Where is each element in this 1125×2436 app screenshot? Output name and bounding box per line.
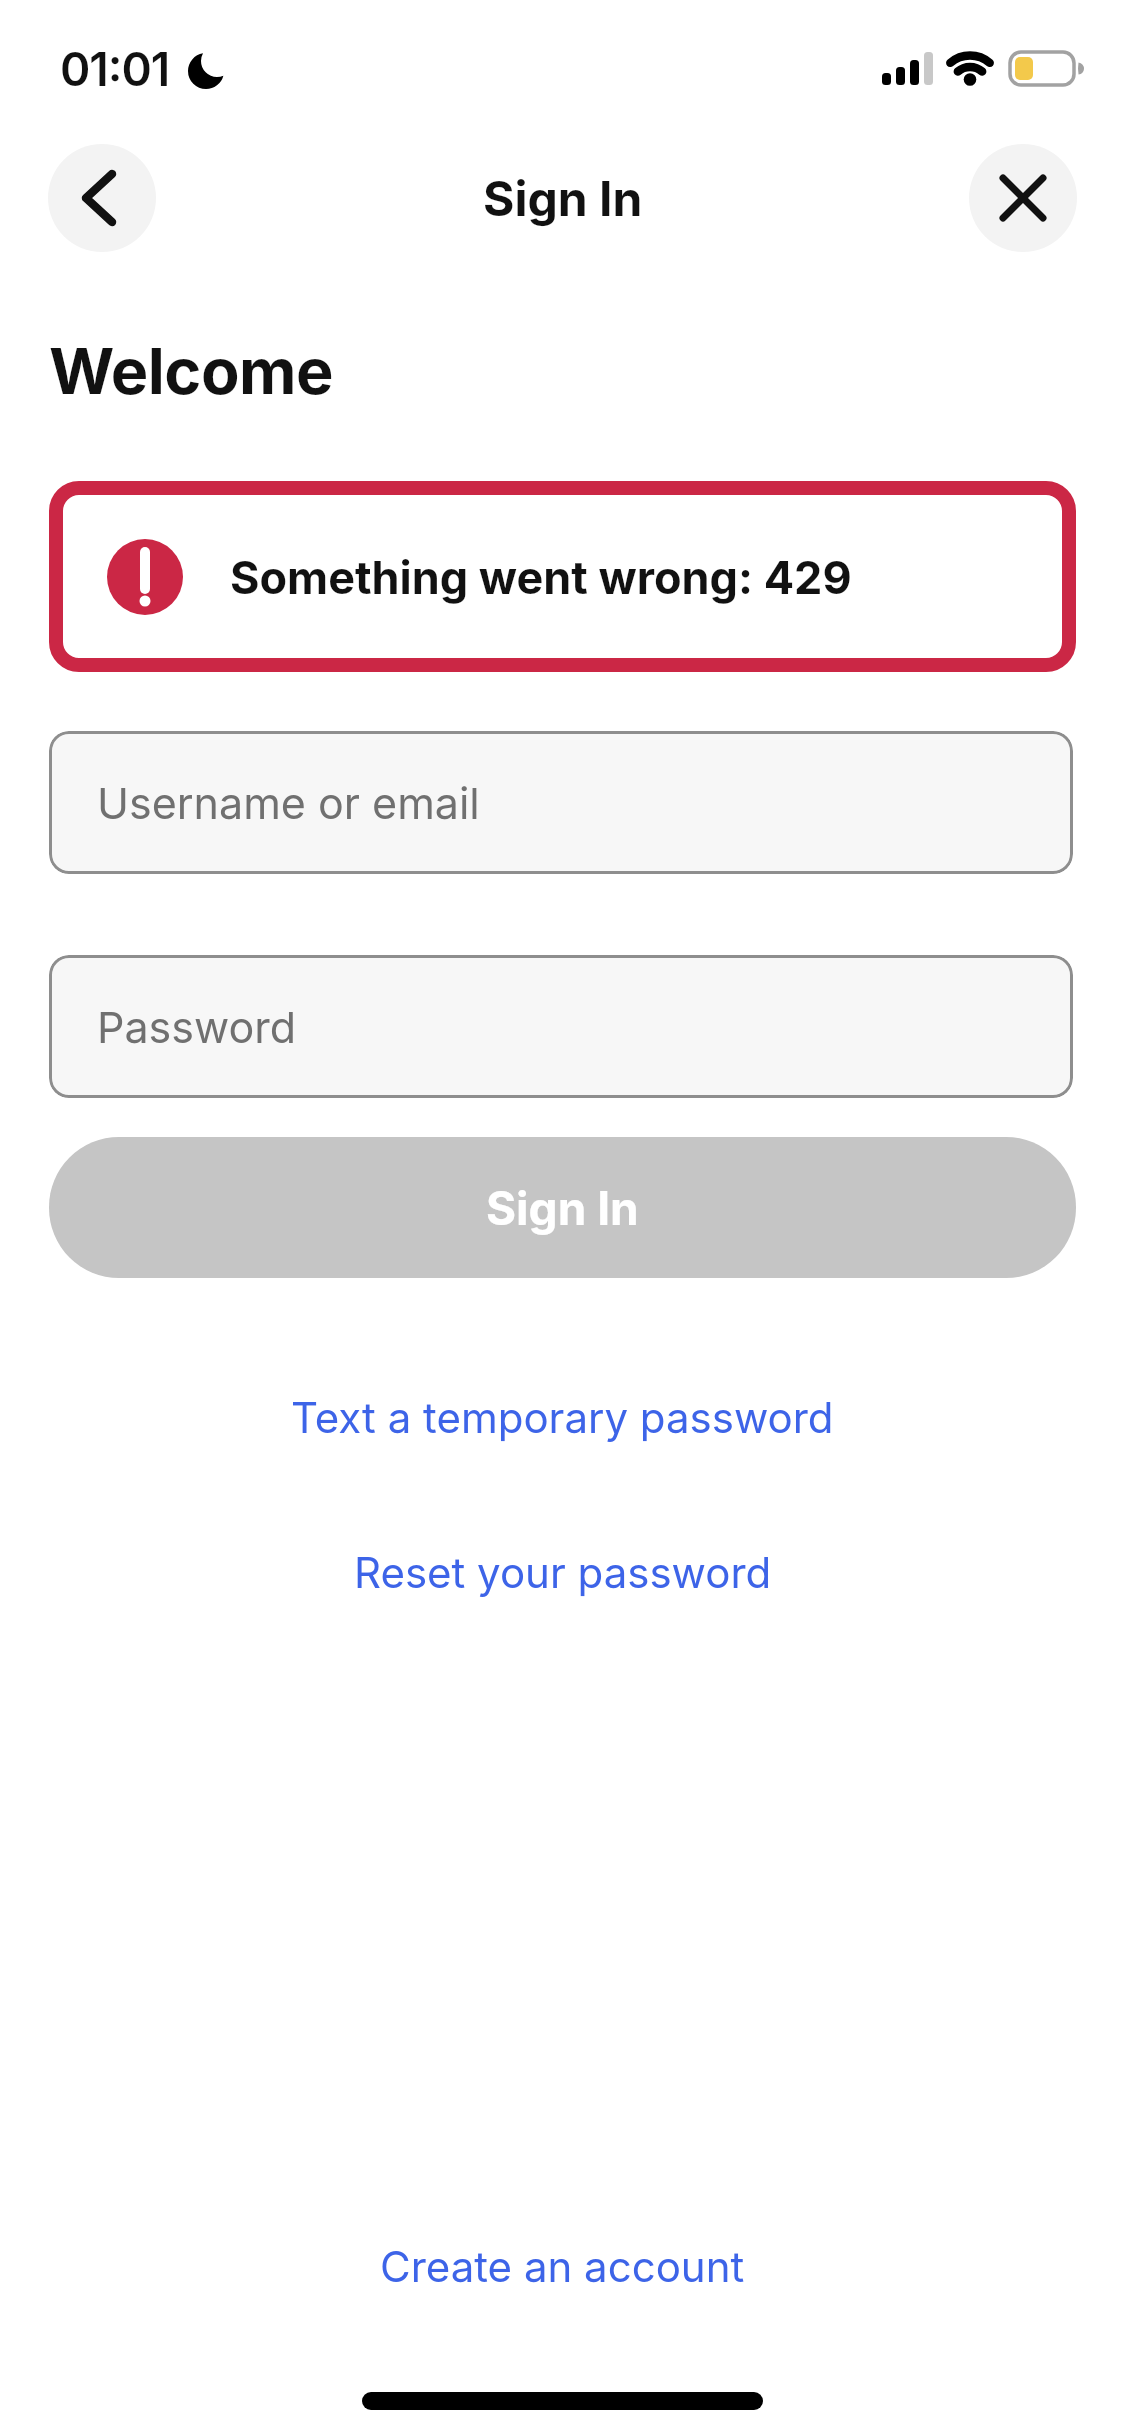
staticText: Reset your password	[354, 1547, 772, 1598]
staticText: 01:01	[60, 41, 170, 97]
button[interactable]: Username or email	[49, 731, 1073, 874]
staticText: Welcome	[49, 333, 334, 409]
button[interactable]: Create an account	[380, 2241, 745, 2292]
button[interactable]: Text a temporary password	[291, 1392, 834, 1443]
button[interactable]: Reset your password	[354, 1547, 772, 1598]
button[interactable]: Password	[49, 955, 1073, 1098]
staticText: Sign In	[483, 169, 643, 227]
button[interactable]	[969, 144, 1077, 252]
button[interactable]: Sign In	[49, 1137, 1076, 1278]
staticText: Something went wrong: 429	[230, 550, 852, 604]
button[interactable]	[48, 144, 156, 252]
staticText: Create an account	[380, 2241, 745, 2292]
staticText: Sign In	[486, 1180, 639, 1236]
staticText: Password	[97, 1001, 297, 1053]
staticText: Text a temporary password	[291, 1392, 834, 1443]
staticText: Username or email	[97, 777, 480, 829]
